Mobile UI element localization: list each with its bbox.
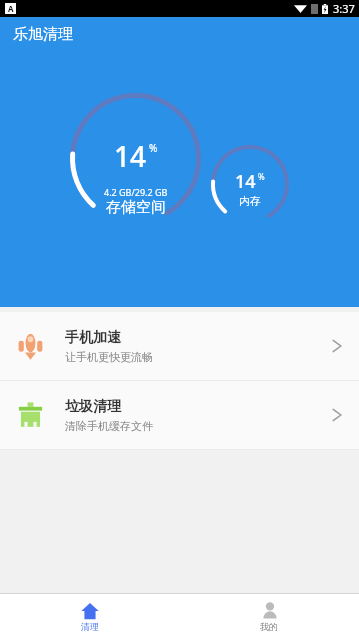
staticText: 我的 xyxy=(260,621,278,632)
staticText: A xyxy=(8,3,14,14)
staticText: % xyxy=(258,171,265,182)
button[interactable]: 我的 xyxy=(179,594,359,638)
button[interactable]: 清理 xyxy=(0,594,179,638)
button[interactable]: 手机加速 xyxy=(0,312,359,380)
staticText: 存储空间 xyxy=(106,198,166,217)
staticText: 4.2 GB/29.2 GB xyxy=(104,186,168,198)
staticText: 3:37 xyxy=(333,1,355,16)
staticText: 手机加速 xyxy=(65,329,121,347)
other: Open xyxy=(331,405,343,425)
button[interactable]: 垃圾清理 xyxy=(0,381,359,449)
staticText: 清理 xyxy=(81,621,99,632)
staticText: 乐旭清理 xyxy=(13,25,73,44)
staticText: 14 xyxy=(235,169,256,194)
other: Open xyxy=(331,336,343,356)
staticText: % xyxy=(149,141,158,155)
staticText: 14 xyxy=(114,137,147,175)
staticText: 清除手机缓存文件 xyxy=(65,419,153,433)
staticText: 让手机更快更流畅 xyxy=(65,350,153,364)
staticText: 内存 xyxy=(239,194,261,208)
staticText: 垃圾清理 xyxy=(65,398,121,416)
